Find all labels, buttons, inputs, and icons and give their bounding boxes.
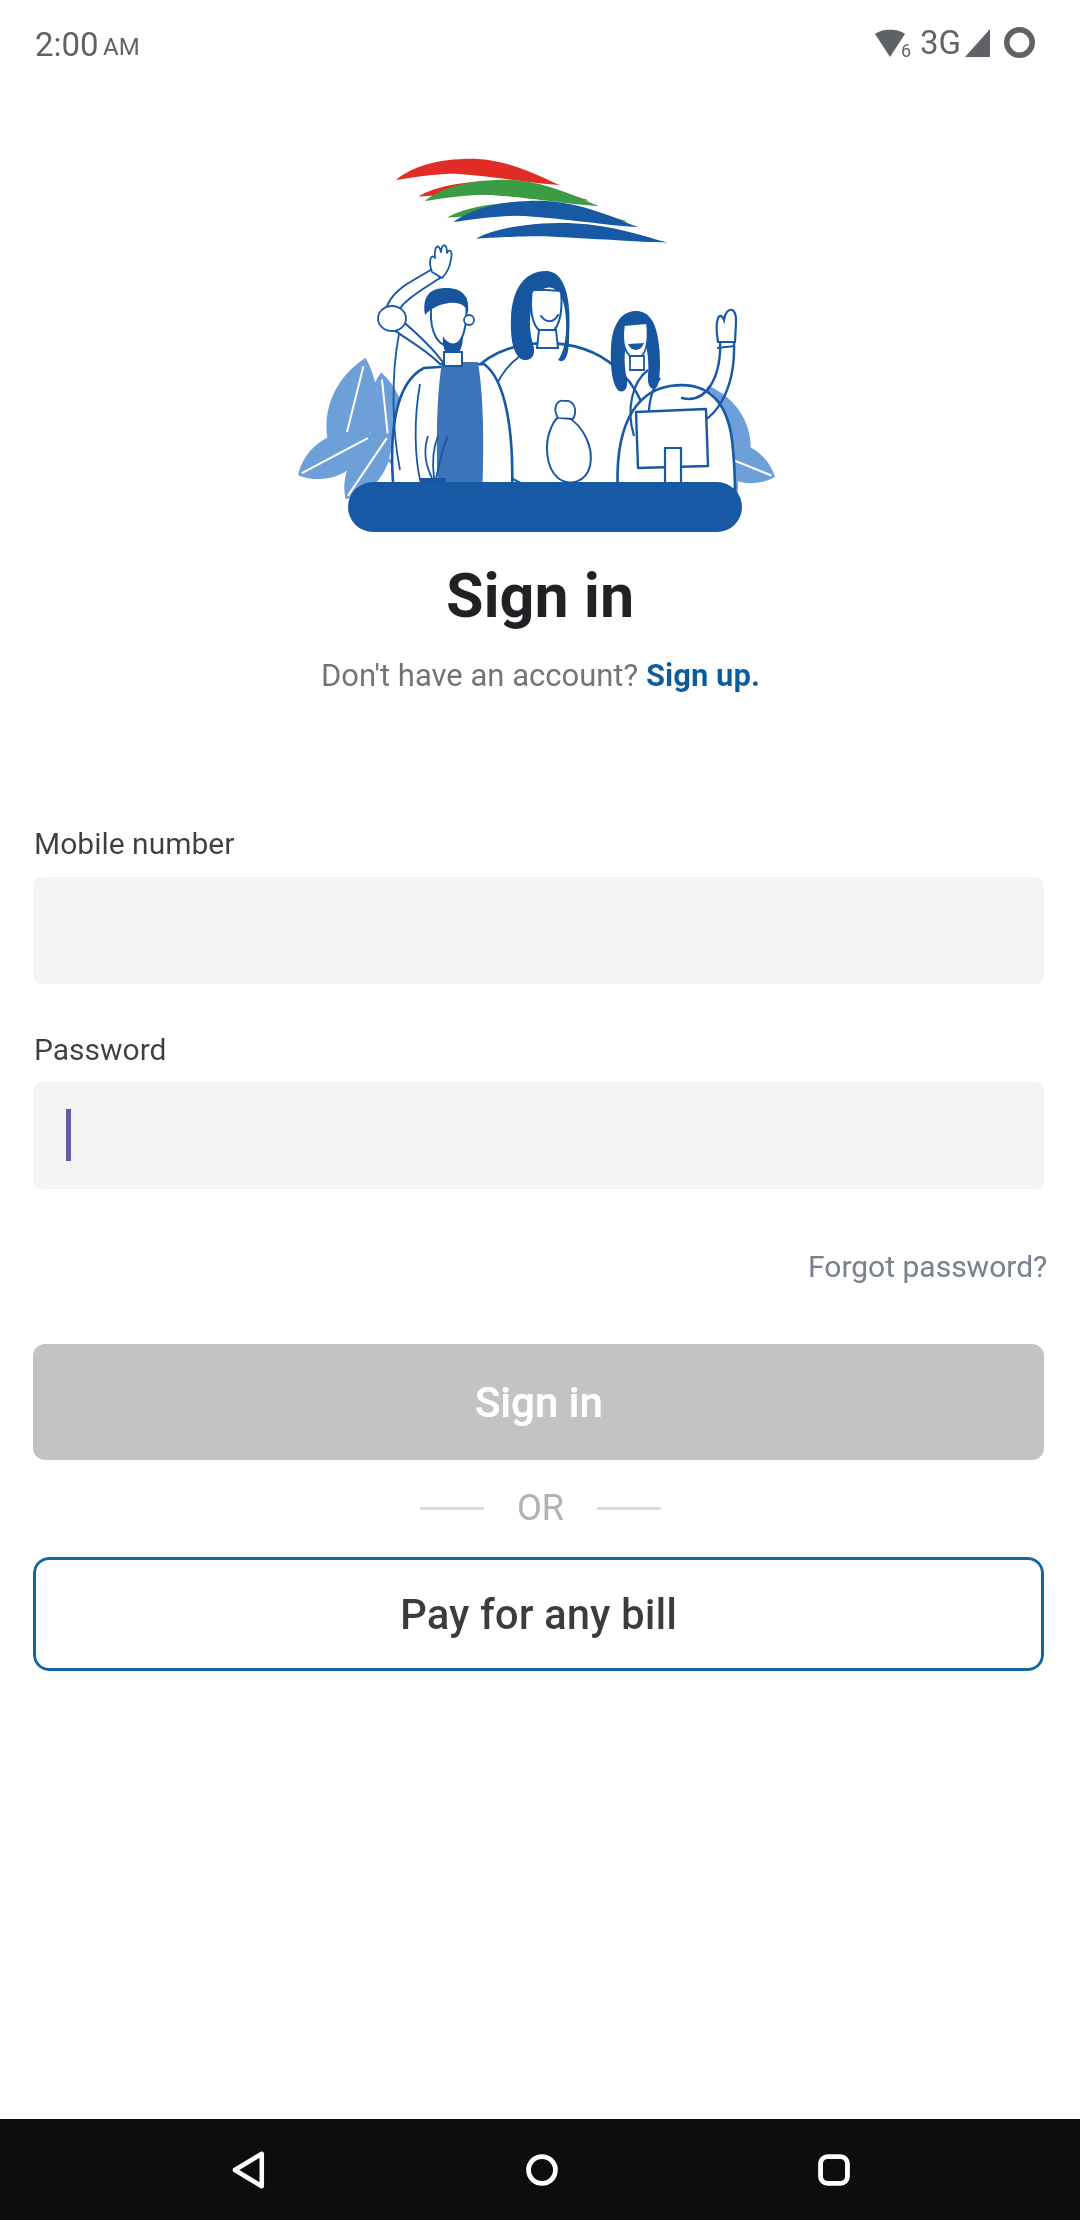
staticText: OR bbox=[517, 1487, 564, 1529]
staticText: Pay for any bill bbox=[400, 1590, 677, 1639]
button[interactable]: Sign in bbox=[33, 1344, 1044, 1460]
button[interactable]: Back bbox=[190, 2119, 305, 2220]
staticText: 2:00 bbox=[35, 25, 99, 64]
button[interactable]: Forgot password? bbox=[808, 1249, 1048, 1284]
staticText: Sign up. bbox=[646, 657, 760, 693]
button[interactable]: Pay for any bill bbox=[33, 1557, 1044, 1671]
staticText: 3G bbox=[920, 23, 962, 62]
staticText: Don't have an account? bbox=[321, 657, 646, 693]
staticText: 6 bbox=[901, 40, 912, 61]
button[interactable]: Password input bbox=[33, 1082, 1044, 1189]
staticText: Sign in bbox=[475, 1378, 603, 1427]
staticText: Mobile number bbox=[34, 826, 235, 861]
staticText: AM bbox=[103, 33, 140, 61]
button[interactable]: Recent apps bbox=[776, 2119, 891, 2220]
staticText: Password bbox=[34, 1032, 167, 1067]
staticText: Sign in bbox=[0, 560, 1080, 631]
staticText: Forgot password? bbox=[808, 1249, 1048, 1284]
button[interactable]: Sign up. bbox=[646, 657, 760, 693]
button[interactable]: Home bbox=[484, 2119, 599, 2220]
